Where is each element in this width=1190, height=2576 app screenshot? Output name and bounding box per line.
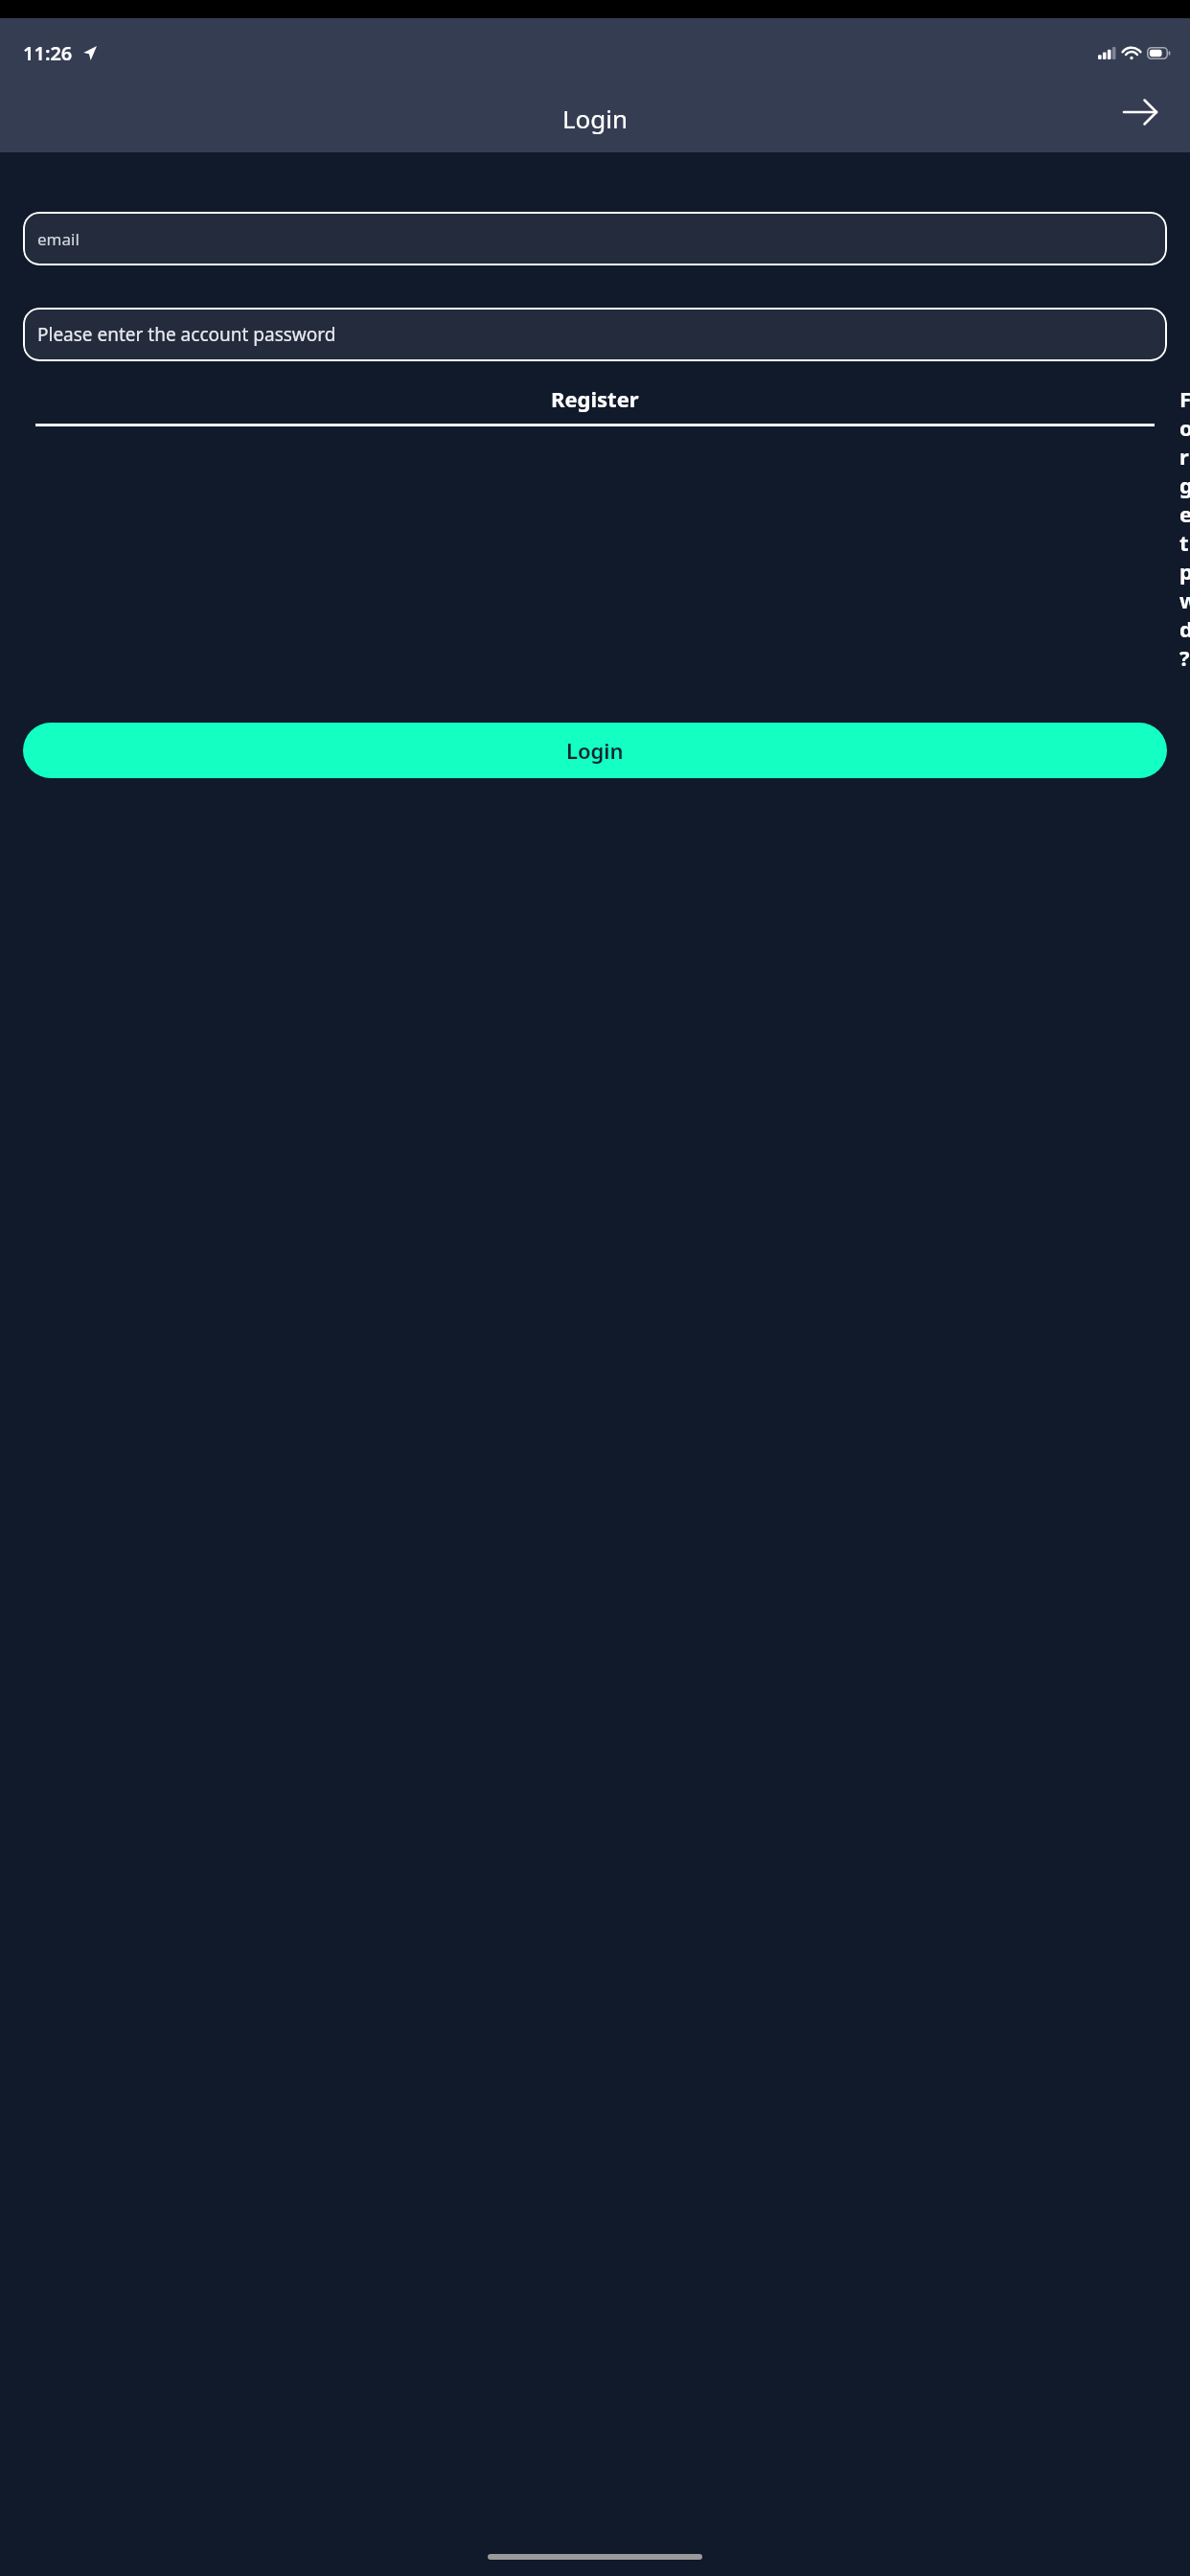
staticText: email	[37, 228, 80, 250]
button[interactable]: Login	[23, 723, 1167, 778]
staticText: Please enter the account password	[37, 322, 336, 347]
staticText: Login	[566, 736, 624, 765]
staticText: Register	[551, 384, 639, 413]
button[interactable]: Next	[1115, 87, 1165, 137]
button[interactable]: Please enter the account password	[23, 308, 1167, 361]
button[interactable]: Register	[23, 382, 1167, 428]
staticText: 11:26	[23, 40, 73, 66]
button[interactable]: email	[23, 212, 1167, 265]
staticText: Login	[562, 102, 629, 135]
